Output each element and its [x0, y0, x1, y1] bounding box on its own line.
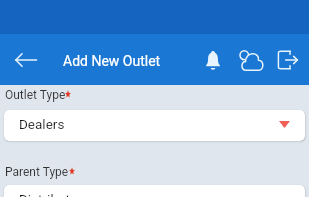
button[interactable]: Weather — [237, 46, 265, 74]
button[interactable]: Notifications — [199, 46, 227, 74]
staticText: Parent Type — [5, 165, 69, 179]
staticText: Distributor — [19, 191, 82, 197]
button[interactable]: Distributor — [4, 185, 305, 197]
button[interactable]: Back — [10, 44, 42, 76]
staticText: Dealers — [19, 116, 65, 132]
staticText: Add New Outlet — [63, 53, 161, 69]
button[interactable]: Logout — [274, 46, 302, 74]
button[interactable]: Dealers — [4, 110, 305, 141]
staticText: Outlet Type — [5, 88, 66, 102]
